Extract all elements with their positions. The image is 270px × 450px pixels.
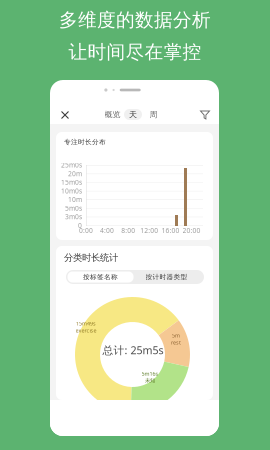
staticText: 多维度的数据分析: [59, 8, 211, 31]
button[interactable]: 天: [124, 109, 142, 120]
staticText: 0:00: [79, 226, 93, 235]
staticText: 8:00: [121, 226, 135, 235]
staticText: 未知: [145, 377, 155, 384]
staticText: 专注时长分布: [64, 138, 106, 146]
button[interactable]: 按标签名称: [67, 271, 133, 282]
staticText: 概览: [104, 110, 120, 119]
staticText: 10m0s: [61, 186, 82, 195]
button[interactable]: Filter: [194, 104, 216, 126]
staticText: 按标签名称: [83, 273, 118, 281]
staticText: 5m0s: [65, 204, 82, 213]
staticText: 分类时长统计: [64, 252, 118, 263]
button[interactable]: 按计时器类型: [133, 271, 199, 282]
button[interactable]: 概览: [104, 109, 121, 120]
staticText: rest: [171, 339, 181, 346]
staticText: 3m0s: [65, 212, 82, 221]
staticText: 0: [78, 221, 82, 230]
staticText: 总计: 25m5s: [102, 343, 163, 357]
button[interactable]: Close: [54, 104, 76, 126]
staticText: 15m49s: [76, 320, 96, 327]
staticText: 10m: [68, 195, 82, 204]
staticText: 20:00: [182, 226, 200, 235]
staticText: 按计时器类型: [145, 273, 187, 281]
staticText: 5m16s: [141, 370, 158, 377]
staticText: exercise: [75, 327, 96, 334]
staticText: 20m: [68, 169, 82, 178]
staticText: 让时间尽在掌控: [68, 40, 201, 63]
button[interactable]: 周: [145, 109, 162, 120]
staticText: 5m: [172, 332, 180, 339]
staticText: 25m0s: [61, 161, 82, 169]
staticText: 4:00: [100, 226, 114, 235]
staticText: 12:00: [140, 226, 158, 235]
staticText: 天: [129, 110, 137, 119]
staticText: 15m0s: [61, 178, 82, 187]
staticText: 16:00: [161, 226, 179, 235]
staticText: 周: [149, 110, 157, 119]
